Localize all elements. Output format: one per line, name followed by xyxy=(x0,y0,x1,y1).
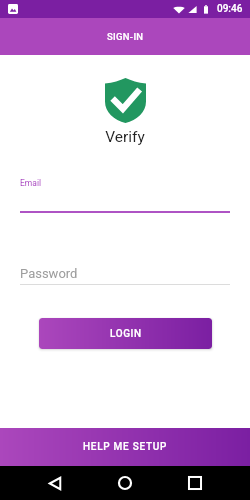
button[interactable]: Back xyxy=(32,466,78,500)
button[interactable]: Home xyxy=(102,466,148,500)
staticText: SIGN-IN xyxy=(107,31,144,42)
staticText: HELP ME SETUP xyxy=(83,441,168,453)
button[interactable]: SIGN-IN xyxy=(0,18,250,55)
button[interactable]: Recent apps xyxy=(172,466,218,500)
button[interactable]: Password xyxy=(0,266,250,285)
staticText: Email xyxy=(20,178,42,188)
button[interactable]: HELP ME SETUP xyxy=(0,428,250,466)
button[interactable]: LOGIN xyxy=(39,318,212,349)
button[interactable]: Email xyxy=(0,178,250,213)
staticText: Password xyxy=(20,266,78,281)
staticText: Verify xyxy=(0,128,250,146)
staticText: LOGIN xyxy=(110,328,142,340)
staticText: 09:46 xyxy=(217,3,243,15)
